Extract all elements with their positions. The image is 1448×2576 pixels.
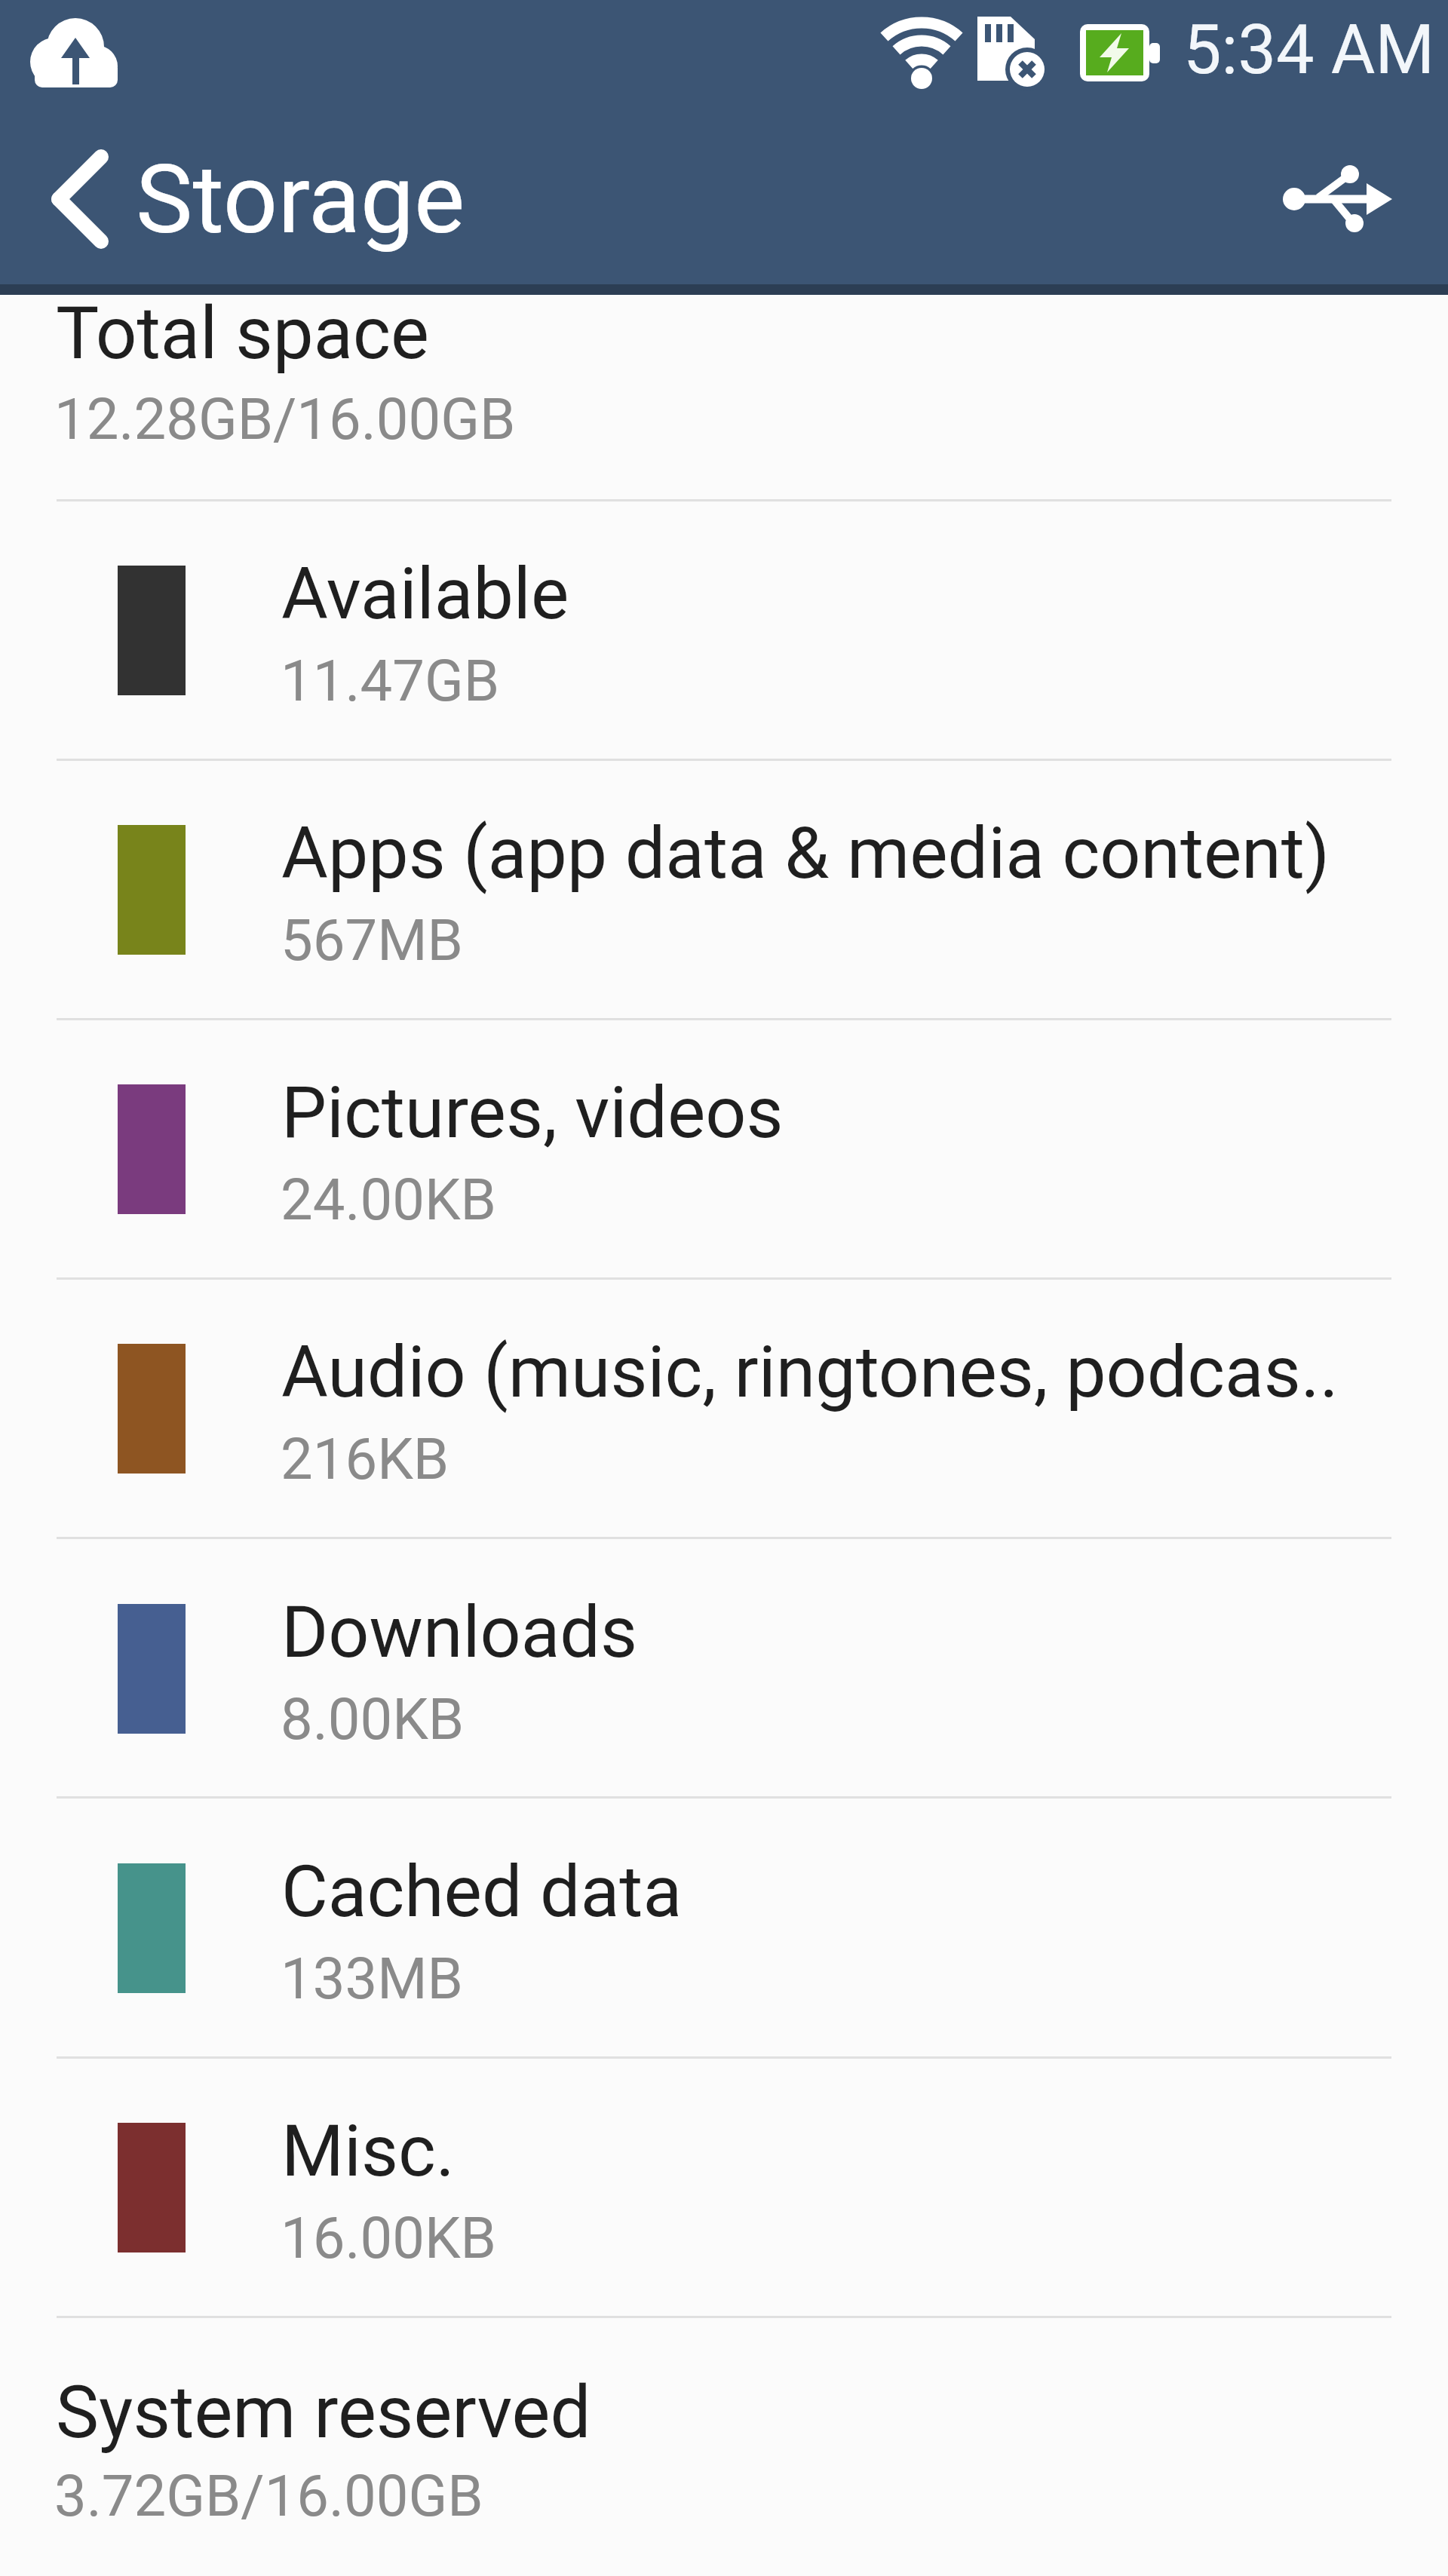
button[interactable]: Pictures, videos bbox=[0, 1018, 1448, 1277]
staticText: Total space bbox=[56, 291, 429, 376]
button[interactable] bbox=[1267, 136, 1403, 264]
staticText: Storage bbox=[136, 143, 465, 256]
button[interactable]: Apps (app data & media content) bbox=[0, 759, 1448, 1018]
staticText: Apps (app data & media content) bbox=[281, 811, 1330, 895]
staticText: System reserved bbox=[56, 2370, 591, 2455]
staticText: 11.47GB bbox=[281, 647, 500, 714]
staticText: 216KB bbox=[281, 1425, 449, 1492]
button[interactable]: Misc. bbox=[0, 2056, 1448, 2316]
staticText: 133MB bbox=[281, 1945, 463, 2012]
button[interactable]: Downloads bbox=[0, 1538, 1448, 1797]
button[interactable]: Available bbox=[0, 499, 1448, 759]
button[interactable] bbox=[15, 121, 128, 279]
staticText: 3.72GB/16.00GB bbox=[54, 2462, 483, 2529]
staticText: Pictures, videos bbox=[281, 1071, 784, 1155]
staticText: 12.28GB/16.00GB bbox=[54, 385, 516, 452]
staticText: 8.00KB bbox=[281, 1685, 465, 1753]
button[interactable]: Audio (music, ringtones, podcas.. bbox=[0, 1277, 1448, 1537]
staticText: 24.00KB bbox=[281, 1166, 496, 1233]
staticText: 16.00KB bbox=[281, 2204, 496, 2271]
staticText: 5:34 AM bbox=[1183, 11, 1435, 90]
staticText: Misc. bbox=[281, 2109, 455, 2193]
button[interactable]: Cached data bbox=[0, 1797, 1448, 2056]
staticText: Cached data bbox=[281, 1850, 683, 1934]
staticText: Audio (music, ringtones, podcas.. bbox=[281, 1330, 1339, 1414]
staticText: Available bbox=[281, 552, 569, 636]
staticText: 567MB bbox=[281, 906, 463, 974]
staticText: Downloads bbox=[281, 1590, 637, 1674]
